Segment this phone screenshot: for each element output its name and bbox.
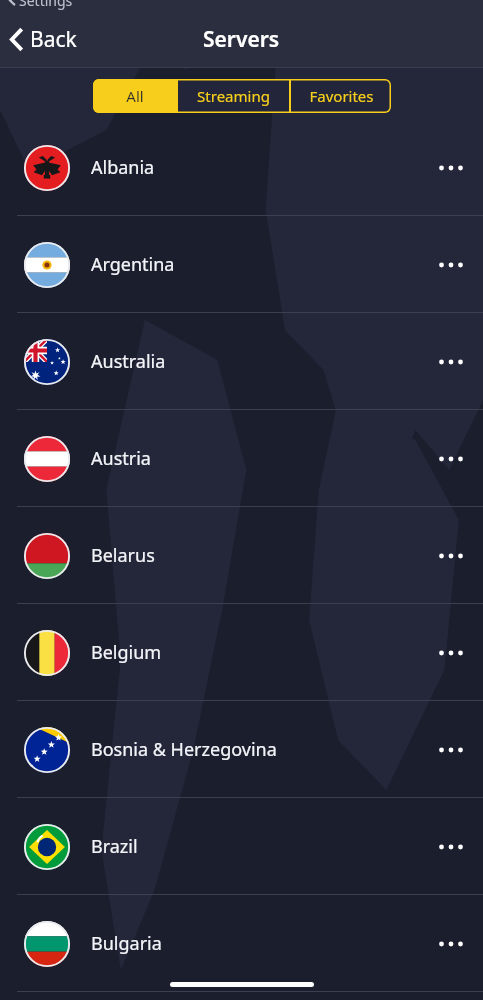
staticText: Brazil [91,834,422,859]
staticText: All [126,86,144,106]
button[interactable]: Back [0,19,93,60]
staticText: Belgium [91,640,422,665]
button[interactable]: Brazil [0,798,483,895]
staticText: Settings [19,0,73,10]
button[interactable]: Belgium [0,604,483,701]
button[interactable]: Albania [0,119,483,216]
button[interactable]: More options for Bosnia & Herzegovina [422,720,480,780]
button[interactable]: More options for Albania [422,138,480,198]
button[interactable]: More options for Brazil [422,817,480,877]
button[interactable]: More options for Belgium [422,623,480,683]
button[interactable]: More options for Austria [422,429,480,489]
button[interactable]: More options for Australia [422,332,480,392]
button[interactable]: Streaming [178,79,289,113]
staticText: Bosnia & Herzegovina [91,737,422,762]
button[interactable]: Bosnia & Herzegovina [0,701,483,798]
staticText: Albania [91,155,422,180]
button[interactable]: All [93,79,176,113]
staticText: Favorites [309,86,374,106]
button[interactable]: More options for Belarus [422,526,480,586]
staticText: Australia [91,349,422,374]
button[interactable]: Favorites [291,79,391,113]
staticText: Bulgaria [91,931,422,956]
button[interactable]: Australia [0,313,483,410]
button[interactable]: Argentina [0,216,483,313]
button[interactable]: More options for Argentina [422,235,480,295]
staticText: Streaming [197,86,270,106]
button[interactable]: Austria [0,410,483,507]
button[interactable]: Belarus [0,507,483,604]
button[interactable]: More options for Bulgaria [422,914,480,974]
staticText: Argentina [91,252,422,277]
staticText: Back [30,25,77,54]
button[interactable]: Bulgaria [0,895,483,992]
staticText: Servers [203,25,280,54]
staticText: Belarus [91,543,422,568]
staticText: Austria [91,446,422,471]
